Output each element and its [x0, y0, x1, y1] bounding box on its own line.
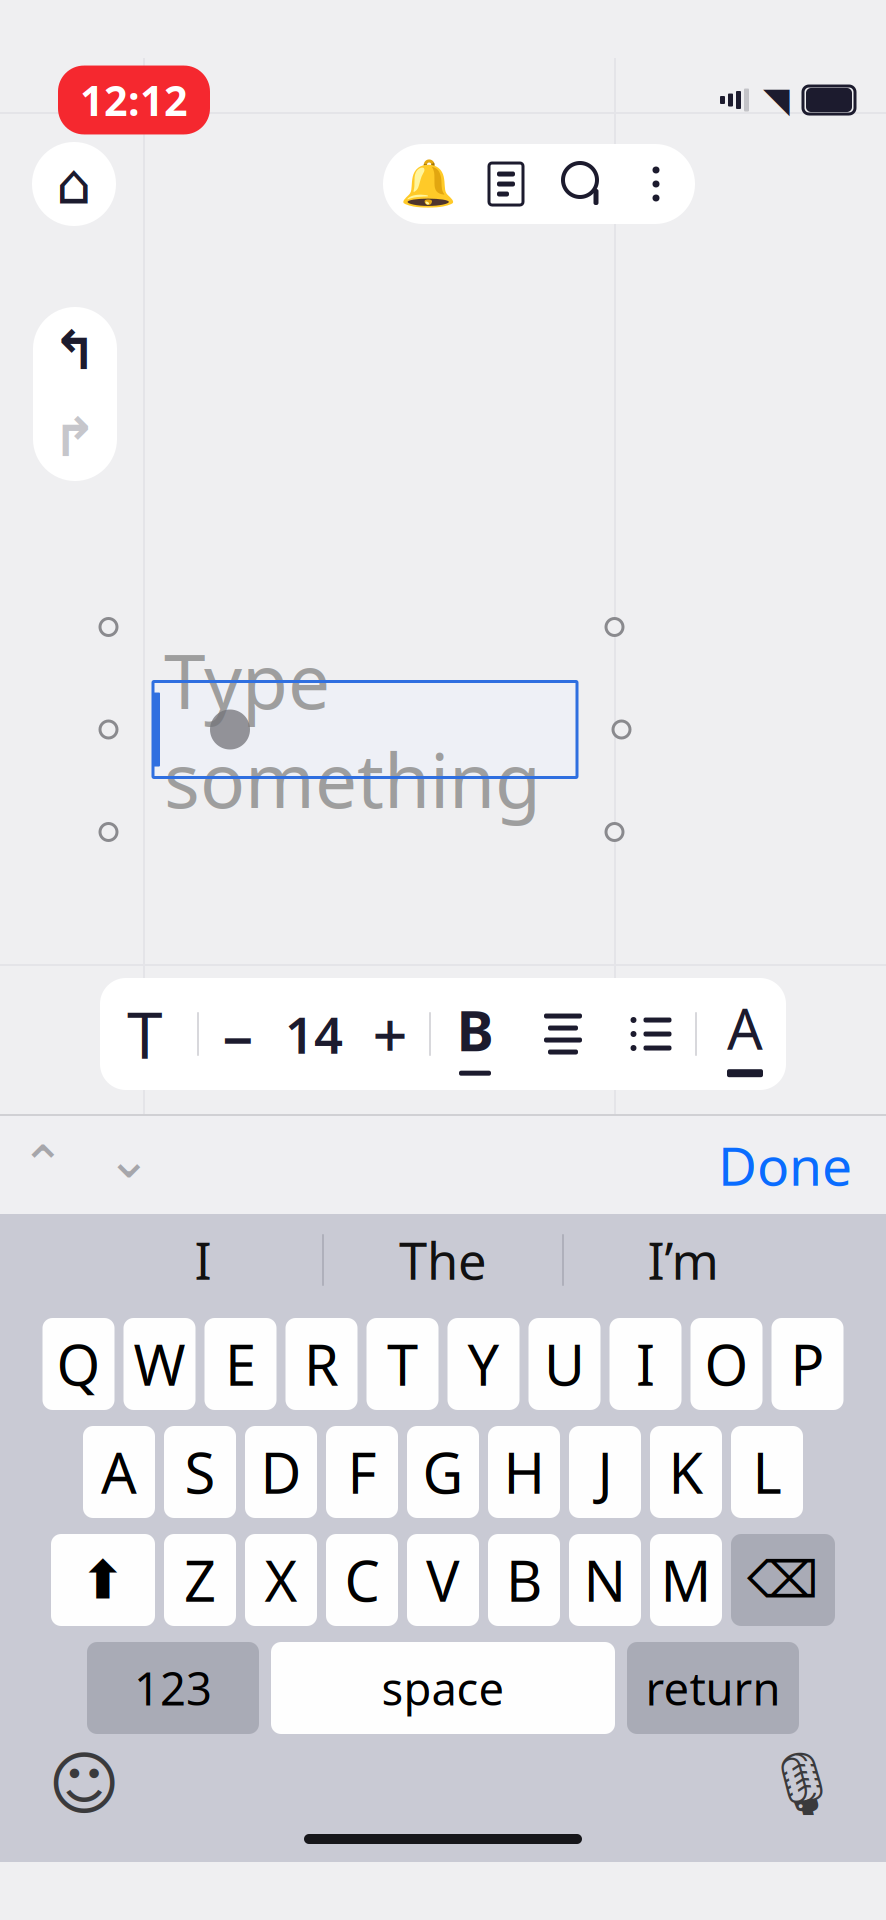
staticText: ⌂ [56, 152, 92, 216]
button[interactable]: Bulleted list [607, 978, 695, 1090]
button[interactable]: P [771, 1318, 843, 1410]
staticText: 123 [134, 1658, 212, 1718]
button[interactable]: Previous field [0, 1117, 86, 1213]
staticText: M [660, 1543, 711, 1617]
button[interactable]: Emoji [34, 1742, 134, 1826]
button[interactable]: Redo [33, 394, 117, 481]
button[interactable]: return [627, 1642, 799, 1734]
button[interactable]: G [407, 1426, 479, 1518]
staticText: + [372, 993, 407, 1075]
staticText: ⌫ [747, 1551, 819, 1609]
staticText: X [264, 1543, 297, 1617]
button[interactable]: T [366, 1318, 438, 1410]
staticText: ◥ [763, 80, 790, 120]
button[interactable]: J [569, 1426, 641, 1518]
staticText: ☺ [48, 1745, 120, 1823]
staticText: D [260, 1435, 301, 1509]
button[interactable]: R [285, 1318, 357, 1410]
button[interactable]: Z [164, 1534, 236, 1626]
staticText: 14 [285, 1000, 343, 1068]
staticText: Type something [164, 630, 541, 829]
button[interactable]: Text color [697, 978, 793, 1090]
staticText: ⌃ [20, 1135, 65, 1195]
button[interactable]: ⌫ [731, 1534, 835, 1626]
staticText: I [636, 1327, 655, 1401]
staticText: Q [56, 1327, 100, 1401]
staticText: R [304, 1327, 339, 1401]
button[interactable]: B [488, 1534, 560, 1626]
button[interactable]: Done [696, 1117, 874, 1213]
button[interactable]: Next field [86, 1111, 172, 1219]
staticText: A [101, 1435, 137, 1509]
button[interactable]: Undo [33, 307, 117, 394]
staticText: ↱ [52, 407, 97, 468]
button[interactable]: C [326, 1534, 398, 1626]
staticText: ⬆ [80, 1550, 125, 1610]
button[interactable]: More options [623, 145, 689, 223]
button[interactable]: U [528, 1318, 600, 1410]
staticText: 12:12 [80, 73, 188, 127]
button[interactable]: Document [467, 145, 545, 223]
button[interactable]: space [271, 1642, 615, 1734]
staticText: F [347, 1435, 376, 1509]
staticText: G [422, 1435, 463, 1509]
staticText: P [790, 1327, 824, 1401]
staticText: K [668, 1435, 703, 1509]
staticText: ⌄ [106, 1129, 151, 1189]
button[interactable]: V [407, 1534, 479, 1626]
staticText: I [194, 1226, 211, 1294]
staticText: J [597, 1435, 612, 1509]
button[interactable]: Search [545, 145, 623, 223]
button[interactable]: W [123, 1318, 195, 1410]
button[interactable]: Notifications [389, 145, 467, 223]
staticText: Done [718, 1130, 852, 1200]
staticText: 🔔 [400, 158, 456, 210]
staticText: I’m [647, 1226, 718, 1294]
button[interactable]: Dictation [752, 1742, 852, 1826]
button[interactable]: The [324, 1214, 562, 1306]
button[interactable]: S [164, 1426, 236, 1518]
staticText: N [583, 1543, 626, 1617]
button[interactable]: I [84, 1214, 322, 1306]
button[interactable]: H [488, 1426, 560, 1518]
button[interactable]: N [569, 1534, 641, 1626]
button[interactable]: 123 [87, 1642, 259, 1734]
staticText: space [381, 1658, 504, 1718]
button[interactable]: E [204, 1318, 276, 1410]
button[interactable]: K [650, 1426, 722, 1518]
button[interactable]: L [731, 1426, 803, 1518]
button[interactable]: I [609, 1318, 681, 1410]
button[interactable]: Y [447, 1318, 519, 1410]
button[interactable]: Bold [431, 978, 519, 1090]
button[interactable]: Increase font size [351, 978, 429, 1090]
staticText: O [704, 1327, 748, 1401]
staticText: S [184, 1435, 215, 1509]
button[interactable]: O [690, 1318, 762, 1410]
staticText: E [225, 1327, 256, 1401]
staticText: L [752, 1435, 781, 1509]
button[interactable]: Home [32, 142, 116, 226]
button[interactable]: Text style [93, 978, 197, 1090]
staticText: return [645, 1658, 780, 1718]
button[interactable]: I’m [564, 1214, 802, 1306]
staticText: B [506, 1543, 542, 1617]
staticText: W [133, 1327, 185, 1401]
button[interactable]: Alignment [519, 978, 607, 1090]
button[interactable]: Decrease font size [199, 978, 277, 1090]
staticText: Y [467, 1327, 499, 1401]
button[interactable]: F [326, 1426, 398, 1518]
button[interactable]: Font size 14 [277, 978, 351, 1090]
button[interactable]: X [245, 1534, 317, 1626]
staticText: B [456, 992, 493, 1067]
button[interactable]: Q [42, 1318, 114, 1410]
staticText: ↰ [52, 320, 97, 381]
staticText: The [399, 1226, 487, 1294]
staticText: H [503, 1435, 544, 1509]
button[interactable]: D [245, 1426, 317, 1518]
staticText: Z [184, 1543, 216, 1617]
staticText: U [544, 1327, 585, 1401]
button[interactable]: ⬆ [51, 1534, 155, 1626]
staticText: T [387, 1327, 418, 1401]
button[interactable]: A [83, 1426, 155, 1518]
button[interactable]: M [650, 1534, 722, 1626]
